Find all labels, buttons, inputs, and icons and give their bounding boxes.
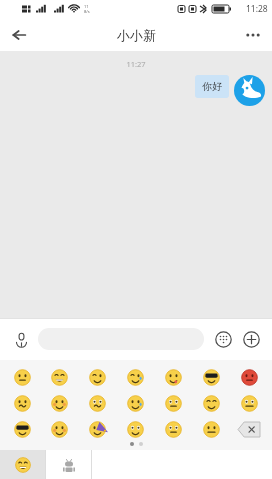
button[interactable]: Emoji: [78, 416, 116, 442]
button[interactable]: More options: [234, 18, 272, 51]
button[interactable]: Emoji: [192, 416, 230, 442]
staticText: 小小新: [117, 27, 156, 43]
button[interactable]: Emoji: [4, 416, 41, 442]
button[interactable]: Emoji: [41, 390, 78, 416]
staticText: 11:27: [0, 59, 272, 69]
button[interactable]: Emoji: [230, 390, 268, 416]
button[interactable]: Emoji: [230, 364, 268, 390]
button[interactable]: Emoji: [116, 364, 154, 390]
button[interactable]: Emoji: [154, 390, 192, 416]
button[interactable]: Sticker tab: [46, 450, 91, 479]
staticText: 11:28: [246, 3, 268, 15]
button[interactable]: Emoji: [116, 390, 154, 416]
button[interactable]: Emoji: [154, 364, 192, 390]
button[interactable]: Emoji: [41, 416, 78, 442]
button[interactable]: Emoji: [78, 390, 116, 416]
button[interactable]: Emoji: [192, 364, 230, 390]
button[interactable]: Avatar: [234, 75, 265, 106]
button[interactable]: Delete: [230, 416, 268, 442]
button[interactable]: Emoji: [4, 364, 41, 390]
button[interactable]: Emoji: [116, 416, 154, 442]
button[interactable]: Voice message: [8, 326, 34, 352]
button[interactable]: Emoji: [154, 416, 192, 442]
button[interactable]: Add attachment: [238, 326, 264, 352]
button[interactable]: Emoji tab: [0, 450, 45, 479]
button[interactable]: 你好: [195, 75, 229, 98]
button[interactable]: Emoji: [192, 390, 230, 416]
button[interactable]: Emoji: [4, 390, 41, 416]
button[interactable]: Back: [0, 18, 38, 51]
staticText: 你好: [202, 80, 222, 93]
button[interactable]: Keyboard: [210, 326, 236, 352]
staticText: 11 8/s: [84, 4, 90, 14]
button[interactable]: Emoji: [78, 364, 116, 390]
button[interactable]: Emoji: [41, 364, 78, 390]
